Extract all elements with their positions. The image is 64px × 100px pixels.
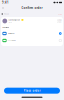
staticText: •••• 4242 bbox=[8, 40, 16, 41]
staticText: Payment bbox=[2, 27, 9, 28]
button[interactable]: •••• 4242 bbox=[1, 37, 63, 44]
button[interactable]: Apple Pay bbox=[1, 30, 63, 37]
staticText: 9:41 bbox=[2, 1, 9, 4]
button[interactable]: Place order bbox=[4, 88, 60, 94]
staticText: Place order bbox=[23, 89, 40, 92]
staticText: Sunrise Market bbox=[8, 19, 20, 21]
staticText: Subtotal bbox=[57, 19, 62, 21]
staticText: 04:59 bbox=[58, 13, 62, 15]
staticText: $24.80 bbox=[57, 21, 62, 23]
staticText: Pickup bbox=[4, 13, 9, 15]
staticText: Apple Pay bbox=[8, 33, 15, 34]
staticText: Confirm order bbox=[21, 6, 42, 10]
staticText: 3 items bbox=[8, 21, 12, 23]
